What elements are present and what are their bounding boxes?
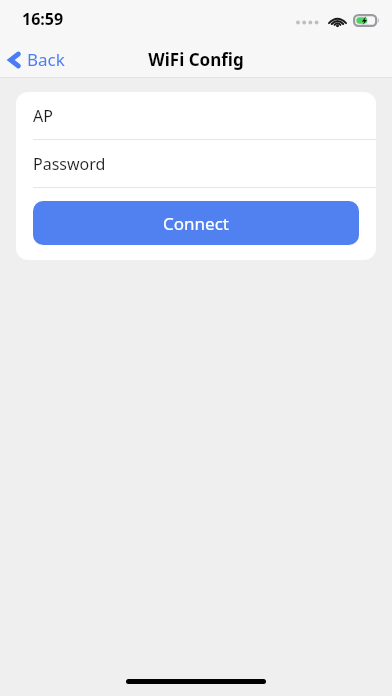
- other: Home indicator: [0, 674, 392, 696]
- button[interactable]: Password: [16, 140, 376, 187]
- button[interactable]: Back: [0, 44, 77, 75]
- staticText: WiFi Config: [148, 48, 244, 71]
- staticText: 16:59: [22, 8, 64, 30]
- button[interactable]: AP: [16, 92, 376, 139]
- staticText: Password: [33, 153, 106, 175]
- button[interactable]: Connect: [33, 201, 359, 245]
- staticText: Back: [27, 48, 65, 71]
- staticText: Connect: [163, 212, 229, 235]
- staticText: AP: [33, 105, 53, 127]
